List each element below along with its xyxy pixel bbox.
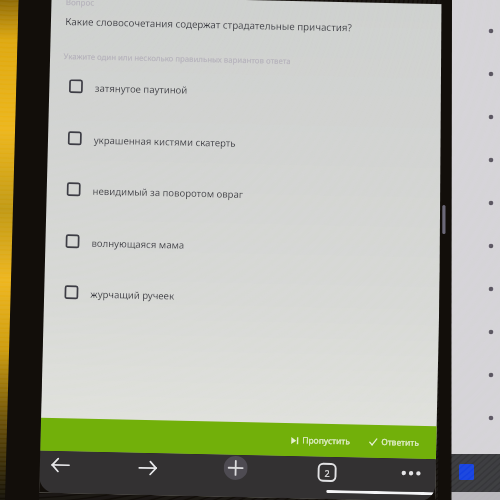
staticText: затянутое паутиной (95, 82, 188, 97)
button[interactable]: Forward (132, 453, 162, 482)
button[interactable]: Ответить (362, 430, 426, 455)
button[interactable]: Tabs (312, 458, 342, 487)
staticText: украшенная кистями скатерть (94, 134, 236, 150)
staticText: Ответить (381, 436, 419, 449)
staticText: волнующаяся мама (91, 237, 185, 252)
staticText: невидимый за поворотом овраг (92, 185, 244, 201)
button[interactable]: Back (45, 451, 75, 479)
button[interactable]: невидимый за поворотом овраг (45, 183, 442, 229)
button[interactable]: Пропустить (284, 428, 357, 454)
button[interactable]: затянутое паутиной (47, 80, 444, 126)
staticText: Вопрос (66, 0, 95, 8)
staticText: журчащий ручеек (90, 288, 175, 302)
button[interactable]: журчащий ручеек (43, 286, 439, 332)
staticText: 2 (324, 467, 331, 479)
button[interactable]: New tab (223, 456, 248, 480)
button[interactable]: More options (396, 458, 426, 488)
staticText: Пропустить (302, 434, 350, 447)
staticText: Укажите один или несколько правильных ва… (63, 51, 292, 67)
button[interactable]: украшенная кистями скатерть (46, 132, 443, 178)
staticText: Какие словосочетания содержат страдатель… (65, 15, 352, 34)
button[interactable]: волнующаяся мама (44, 235, 441, 281)
